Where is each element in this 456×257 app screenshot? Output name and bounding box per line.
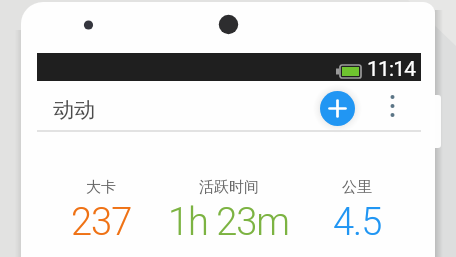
staticText: 4.5 xyxy=(333,200,382,245)
staticText: 活跃时间 xyxy=(199,178,259,197)
staticText: 1h 23m xyxy=(168,200,290,245)
button[interactable] xyxy=(378,85,407,125)
staticText: 11:14 xyxy=(367,57,416,82)
button[interactable]: 活跃时间 xyxy=(165,132,293,257)
staticText: 大卡 xyxy=(86,178,116,197)
staticText: 动动 xyxy=(53,97,95,123)
staticText: 公里 xyxy=(342,178,372,197)
button[interactable]: 大卡 xyxy=(37,132,165,257)
staticText: 237 xyxy=(71,200,132,245)
button[interactable] xyxy=(320,91,355,126)
button[interactable]: 公里 xyxy=(293,132,421,257)
